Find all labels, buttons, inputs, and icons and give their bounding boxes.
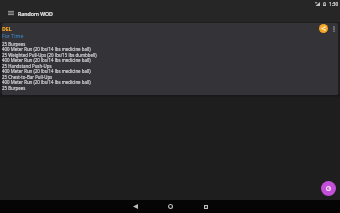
staticText: 25 Burpees <box>2 41 26 47</box>
staticText: 25 Weighted Pull-Ups (20 lbs/15 lbs dumb… <box>2 52 97 58</box>
staticText: 400 Meter Run (20 lbs/14 lbs medicine ba… <box>2 46 91 52</box>
staticText: For Time <box>2 32 24 39</box>
staticText: Random WOD <box>18 10 53 17</box>
button[interactable]: Open navigation drawer <box>0 6 16 20</box>
button[interactable]: Home <box>153 200 188 213</box>
staticText: 25 Chest-to-Bar Pull-Ups <box>2 74 53 80</box>
button[interactable]: Recent apps <box>188 200 223 213</box>
button[interactable]: Back <box>118 200 153 213</box>
button[interactable]: More options <box>330 24 337 33</box>
staticText: 400 Meter Run (20 lbs/14 lbs medicine ba… <box>2 79 91 85</box>
button[interactable]: DEL <box>2 23 338 95</box>
staticText: 25 Handstand Push-Ups <box>2 63 52 69</box>
staticText: 400 Meter Run (20 lbs/14 lbs medicine ba… <box>2 57 91 63</box>
staticText: 1:30 <box>329 1 339 7</box>
staticText: 400 Meter Run (20 lbs/14 lbs medicine ba… <box>2 68 91 74</box>
button[interactable]: Share workout <box>319 24 328 33</box>
staticText: DEL <box>2 25 12 32</box>
button[interactable]: Generate random workout <box>321 181 336 196</box>
staticText: 25 Burpees <box>2 85 26 91</box>
